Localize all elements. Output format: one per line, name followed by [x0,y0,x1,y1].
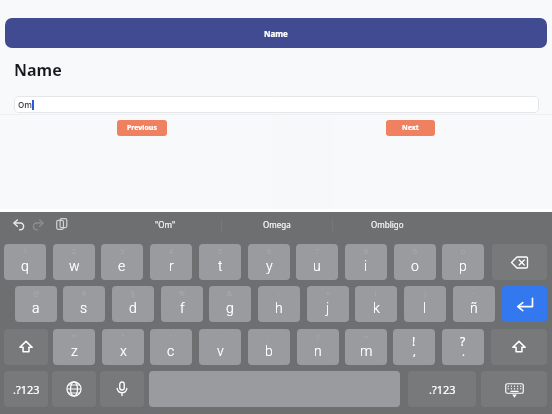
staticText: x [120,343,127,359]
button[interactable]: # [63,286,105,322]
staticText: Om [18,99,32,110]
button[interactable]: * [53,329,95,365]
staticText: 0 [461,247,465,257]
staticText: % [179,289,185,299]
staticText: 1 [23,247,27,257]
button[interactable]: Shift [491,329,547,365]
button[interactable]: Symbols [4,371,48,407]
staticText: 9 [413,247,417,257]
staticText: Name [14,59,62,81]
staticText: @ [33,289,40,299]
staticText: 4 [169,247,173,257]
staticText: 8 [364,247,368,257]
button[interactable]: 5 [199,244,241,280]
staticText: / [317,332,320,342]
button[interactable]: @ [15,286,57,322]
staticText: c [167,343,175,359]
button[interactable]: Backspace [492,244,547,280]
staticText: f [180,300,185,316]
staticText: 5 [218,247,222,257]
button[interactable]: 0 [442,244,484,280]
button[interactable]: Enter [502,286,547,322]
staticText: ( [375,289,377,299]
button[interactable]: 1 [4,244,46,280]
staticText: q [21,258,29,274]
button[interactable]: Om [14,96,539,113]
button[interactable]: ' [150,329,192,365]
button[interactable]: Next [386,120,435,136]
staticText: Name [264,28,288,39]
button[interactable]: " [102,329,144,365]
button[interactable]: ~ [453,286,495,322]
button[interactable]: ; [248,329,290,365]
staticText: 7 [315,247,319,257]
button[interactable]: $ [112,286,154,322]
button[interactable]: Redo [27,214,49,236]
staticText: d [129,300,137,316]
button[interactable]: Voice input [100,371,144,407]
button[interactable]: Shift [4,329,48,365]
button[interactable]: Hide keyboard [481,371,547,407]
staticText: t [218,258,223,274]
button[interactable]: Ombligo [332,212,443,237]
button[interactable]: % [161,286,203,322]
staticText: p [459,258,467,274]
button[interactable]: Clipboard [51,213,73,235]
staticText: Next [402,123,419,133]
button[interactable]: Omega [221,212,332,237]
button[interactable]: ) [404,286,446,322]
staticText: 2 [72,247,76,257]
button[interactable]: Previous [117,120,167,136]
button[interactable]: 4 [150,244,192,280]
staticText: . [462,344,465,359]
button[interactable]: ? [442,329,484,365]
staticText: .?123 [429,382,456,397]
button[interactable]: - [258,286,300,322]
button[interactable]: Symbols [408,371,476,407]
staticText: y [266,258,273,274]
button[interactable]: Name [5,18,547,48]
staticText: n [314,343,322,359]
staticText: Previous [127,123,157,133]
staticText: & [227,289,233,299]
staticText: v [217,343,224,359]
staticText: 3 [120,247,124,257]
staticText: 6 [267,247,271,257]
button[interactable]: / [297,329,339,365]
staticText: , [413,344,416,359]
button[interactable]: ! [393,329,435,365]
staticText: b [265,343,273,359]
staticText: r [169,258,174,274]
button[interactable]: 2 [53,244,95,280]
button[interactable]: = [345,329,387,365]
staticText: w [69,258,80,274]
staticText: m [360,343,373,359]
button[interactable]: : [199,329,241,365]
button[interactable]: "Om" [110,212,221,237]
button[interactable]: 9 [394,244,436,280]
button[interactable]: 6 [248,244,290,280]
button[interactable]: 7 [296,244,338,280]
button[interactable]: Change language [52,371,96,407]
staticText: Ombligo [371,219,404,230]
button[interactable]: & [209,286,251,322]
staticText: * [72,332,76,342]
button[interactable]: Undo [8,214,30,236]
button[interactable]: ( [355,286,397,322]
staticText: ) [424,289,426,299]
staticText: # [82,289,87,299]
staticText: l [423,300,427,316]
staticText: ! [412,333,416,349]
button[interactable]: + [307,286,349,322]
button[interactable]: 3 [101,244,143,280]
staticText: s [80,300,88,316]
staticText: u [313,258,321,274]
staticText: ? [460,333,466,349]
button[interactable]: 8 [345,244,387,280]
